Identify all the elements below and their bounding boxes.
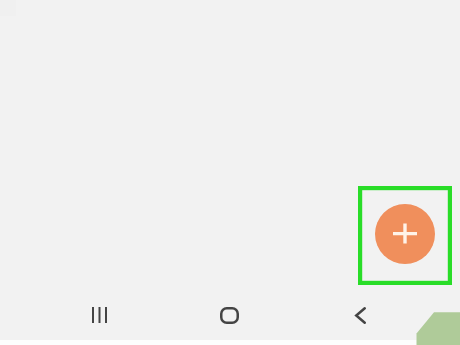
button[interactable]: Home — [209, 295, 249, 335]
button[interactable]: Add — [375, 204, 435, 264]
button[interactable]: Recent apps — [79, 295, 119, 335]
button[interactable]: Back — [340, 295, 380, 335]
